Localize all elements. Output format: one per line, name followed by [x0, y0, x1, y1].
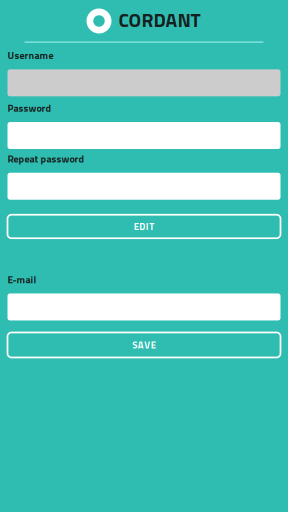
- staticText: EDIT: [134, 219, 154, 234]
- staticText: SAVE: [132, 338, 156, 352]
- staticText: CORDANT: [118, 5, 200, 34]
- button[interactable]: SAVE: [7, 332, 280, 357]
- staticText: Username: [7, 48, 53, 63]
- button[interactable]: E-mail: [7, 293, 280, 320]
- staticText: E-mail: [7, 272, 36, 287]
- button[interactable]: Username: [7, 69, 280, 96]
- staticText: Password: [7, 100, 51, 116]
- button[interactable]: Repeat password: [7, 173, 280, 200]
- button[interactable]: EDIT: [7, 215, 280, 238]
- staticText: Repeat password: [7, 151, 84, 166]
